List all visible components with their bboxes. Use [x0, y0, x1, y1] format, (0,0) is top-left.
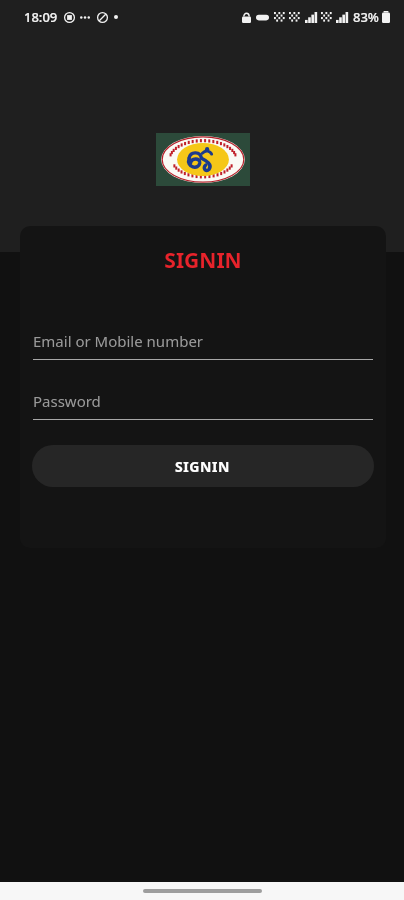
staticText: SIGNIN [20, 246, 386, 275]
button[interactable]: SIGNIN [32, 445, 374, 487]
staticText: Email or Mobile number [33, 331, 204, 351]
staticText: 18:09 [24, 8, 58, 26]
button[interactable]: Password [33, 391, 373, 420]
staticText: Password [33, 391, 101, 411]
button[interactable]: Email or Mobile number [33, 331, 373, 360]
staticText: SIGNIN [175, 457, 231, 476]
staticText: 83% [353, 8, 379, 26]
